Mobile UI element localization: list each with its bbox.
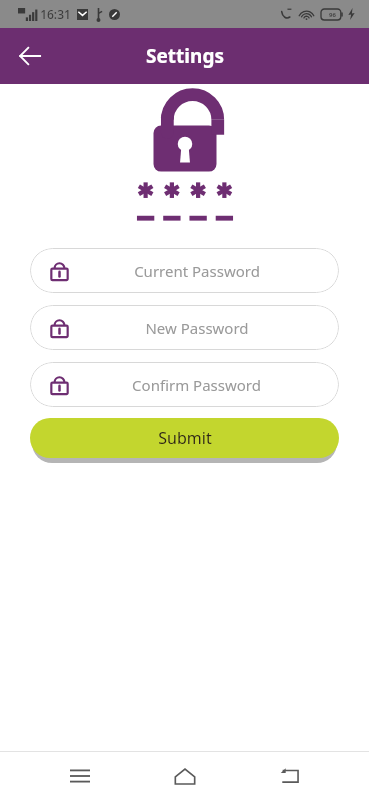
button[interactable]: Confirm Password <box>30 362 339 407</box>
staticText: Submit <box>158 427 212 449</box>
button[interactable]: New Password <box>30 305 339 350</box>
staticText: Confirm Password <box>132 375 261 395</box>
staticText: New Password <box>145 318 249 338</box>
button[interactable]: Back <box>265 752 313 800</box>
staticText: Current Password <box>134 261 260 281</box>
button[interactable]: Home <box>161 752 209 800</box>
staticText: Settings <box>146 43 224 69</box>
staticText: 96 <box>329 11 336 19</box>
button[interactable]: Current Password <box>30 248 339 293</box>
staticText: 16:31 <box>40 6 71 22</box>
button[interactable]: Submit <box>30 418 339 458</box>
button[interactable]: Recent apps <box>56 752 104 800</box>
button[interactable]: Back <box>8 34 52 78</box>
